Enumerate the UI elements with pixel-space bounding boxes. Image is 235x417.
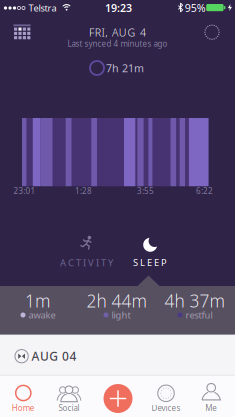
staticText: awake	[28, 309, 55, 321]
button[interactable]: Home	[0, 375, 46, 417]
staticText: Social	[58, 403, 79, 413]
staticText: V	[88, 256, 94, 269]
staticText: E	[154, 256, 159, 269]
staticText: 7h 21m	[106, 61, 144, 75]
staticText: U	[119, 25, 127, 39]
staticText: 23:01	[13, 186, 35, 196]
staticText: 3:55	[137, 186, 154, 196]
button[interactable]: A	[56, 221, 118, 269]
staticText: Devices	[151, 403, 180, 413]
staticText: L	[140, 256, 145, 269]
staticText: 2h 44m	[86, 289, 146, 312]
staticText: F	[89, 25, 94, 39]
staticText: G	[49, 348, 58, 364]
staticText: 4	[140, 25, 146, 39]
staticText: 0	[62, 348, 69, 364]
staticText: I	[83, 256, 86, 269]
staticText: Last synced 4 minutes ago	[67, 38, 167, 49]
staticText: 4	[69, 348, 76, 364]
staticText: S	[133, 256, 138, 269]
staticText: 6:22	[196, 186, 213, 196]
staticText: Me	[205, 403, 217, 413]
staticText: E	[147, 256, 152, 269]
staticText: I	[96, 256, 99, 269]
staticText: light	[111, 309, 130, 321]
staticText: R	[95, 25, 101, 39]
button[interactable]: Me	[188, 375, 234, 417]
button[interactable]: Add	[103, 384, 132, 413]
staticText: restful	[185, 309, 212, 321]
staticText: 95%	[185, 1, 206, 15]
staticText: Y	[108, 256, 113, 269]
staticText: G	[127, 25, 135, 39]
staticText: 1m	[25, 289, 50, 312]
button[interactable]: Sync	[201, 21, 223, 43]
staticText: I	[101, 25, 104, 39]
staticText: A	[112, 25, 118, 39]
button[interactable]: Devices	[143, 375, 189, 417]
staticText: 4h 37m	[164, 289, 224, 312]
staticText: A	[60, 256, 66, 269]
staticText: Telstra	[28, 2, 56, 14]
staticText: ,	[105, 25, 107, 39]
staticText: C	[68, 256, 74, 269]
button[interactable]: Social	[46, 375, 92, 417]
staticText: A	[31, 348, 39, 364]
staticText: 1:28	[75, 186, 92, 196]
staticText: T	[76, 256, 81, 269]
staticText: 19:23	[105, 1, 132, 15]
button[interactable]: Calendar	[10, 21, 34, 43]
button[interactable]: A	[0, 335, 235, 375]
staticText: Home	[12, 403, 35, 413]
staticText: P	[161, 256, 167, 269]
staticText: U	[40, 348, 49, 364]
button[interactable]: S	[122, 221, 176, 269]
staticText: T	[101, 256, 106, 269]
